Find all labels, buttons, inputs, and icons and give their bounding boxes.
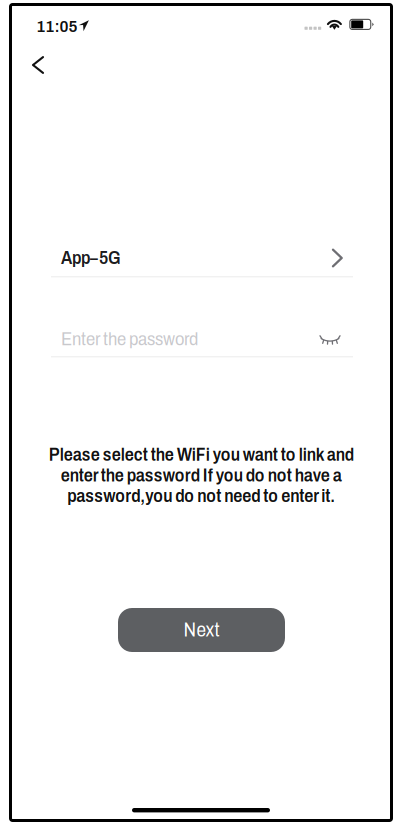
staticText: App–5G: [61, 248, 121, 268]
staticText: 11:05: [36, 17, 77, 36]
staticText: Next: [183, 619, 219, 640]
button[interactable]: Show password: [317, 327, 343, 351]
staticText: Enter the password: [61, 329, 198, 349]
staticText: password,you do not need to enter it.: [67, 486, 335, 506]
button[interactable]: Next: [118, 608, 285, 652]
button[interactable]: Back: [16, 45, 60, 85]
staticText: Please select the WiFi you want to link …: [48, 445, 353, 465]
staticText: enter the password If you do not have a: [60, 466, 341, 485]
button[interactable]: App–5G: [51, 240, 353, 277]
